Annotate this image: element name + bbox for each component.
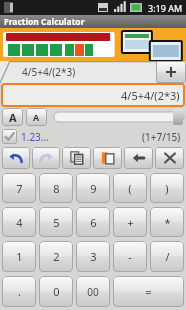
staticText: 7 bbox=[16, 181, 23, 196]
button[interactable]: 5 bbox=[39, 207, 73, 237]
button[interactable]: 6 bbox=[76, 207, 110, 237]
staticText: * bbox=[164, 215, 171, 230]
button[interactable]: 1 bbox=[2, 241, 36, 272]
staticText: (1+7/15) bbox=[142, 130, 181, 144]
button[interactable]: Copy bbox=[62, 147, 91, 169]
staticText: 0 bbox=[53, 284, 60, 299]
button[interactable]: ) bbox=[150, 173, 184, 203]
staticText: Fraction Calculator bbox=[4, 16, 85, 28]
staticText: A bbox=[33, 111, 40, 123]
staticText: A bbox=[9, 110, 17, 125]
staticText: ) bbox=[165, 181, 169, 196]
button[interactable]: 2 bbox=[39, 241, 73, 272]
staticText: / bbox=[165, 249, 170, 264]
button[interactable]: Clear bbox=[155, 147, 184, 169]
staticText: 4/5+4/(2*3) bbox=[121, 88, 180, 103]
staticText: 9 bbox=[90, 181, 97, 196]
button[interactable]: Decimal toggle bbox=[2, 129, 17, 144]
button[interactable]: - bbox=[113, 241, 147, 272]
button[interactable]: / bbox=[150, 241, 184, 272]
button[interactable]: 3 bbox=[76, 241, 110, 272]
button[interactable]: Increase font bbox=[2, 108, 23, 126]
button[interactable]: ( bbox=[113, 173, 147, 203]
staticText: 6 bbox=[90, 215, 97, 230]
button[interactable]: . bbox=[2, 276, 36, 307]
button[interactable]: 4 bbox=[2, 207, 36, 237]
staticText: 5 bbox=[53, 215, 60, 230]
button[interactable]: Decrease font bbox=[26, 108, 47, 126]
staticText: = bbox=[145, 284, 152, 299]
staticText: 3 bbox=[90, 249, 97, 264]
button[interactable]: 4/5+4/(2*3) bbox=[1, 83, 185, 107]
button[interactable]: Redo bbox=[32, 147, 60, 169]
staticText: 3:19 AM bbox=[148, 2, 183, 14]
button[interactable]: Undo bbox=[2, 147, 30, 169]
button[interactable]: 8 bbox=[39, 173, 73, 203]
button[interactable]: 7 bbox=[2, 173, 36, 203]
staticText: ( bbox=[128, 181, 132, 196]
staticText: 4/5+4/(2*3) bbox=[22, 65, 76, 79]
staticText: 2 bbox=[53, 249, 60, 264]
staticText: 4 bbox=[16, 215, 23, 230]
button[interactable]: 9 bbox=[76, 173, 110, 203]
button[interactable]: Font size slider bbox=[54, 108, 184, 126]
button[interactable]: 0 bbox=[39, 276, 73, 307]
button[interactable]: Paste bbox=[93, 147, 122, 169]
button[interactable]: New tab bbox=[156, 61, 186, 83]
button[interactable]: Advertisement bbox=[0, 28, 186, 61]
staticText: 1 bbox=[16, 249, 23, 264]
staticText: 8 bbox=[53, 181, 60, 196]
staticText: 1.23... bbox=[21, 130, 49, 144]
button[interactable]: = bbox=[113, 276, 184, 307]
button[interactable]: * bbox=[150, 207, 184, 237]
button[interactable]: + bbox=[113, 207, 147, 237]
staticText: + bbox=[127, 215, 134, 230]
staticText: - bbox=[128, 249, 132, 264]
staticText: 00 bbox=[87, 285, 99, 299]
button[interactable]: 00 bbox=[76, 276, 110, 307]
staticText: . bbox=[18, 284, 21, 299]
button[interactable]: 4/5+4/(2*3) bbox=[0, 61, 156, 83]
button[interactable]: Backspace bbox=[124, 147, 153, 169]
